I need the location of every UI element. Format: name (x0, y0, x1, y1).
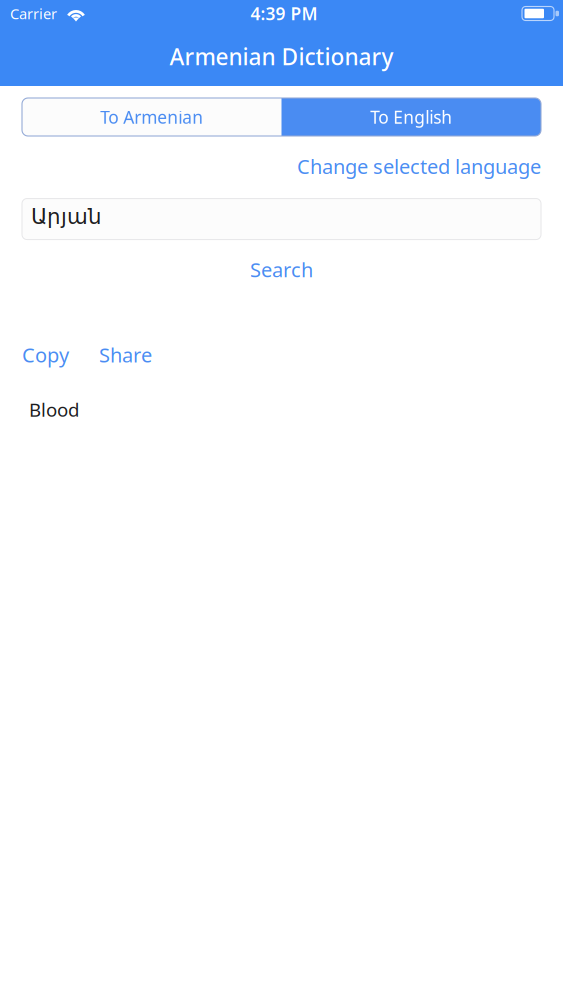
staticText: To English (370, 105, 452, 128)
button[interactable]: Change selected language (297, 153, 541, 180)
staticText: Copy (22, 342, 69, 368)
staticText: Search (250, 256, 313, 283)
staticText: Carrier (10, 4, 57, 23)
staticText: To Armenian (100, 105, 203, 128)
staticText: Armenian Dictionary (169, 41, 393, 71)
staticText: 4:39 PM (250, 2, 317, 25)
staticText: Change selected language (297, 153, 541, 180)
button[interactable]: Copy (22, 342, 69, 368)
staticText: Blood (29, 397, 79, 422)
button[interactable]: Share (99, 342, 152, 368)
button[interactable]: Search (0, 255, 563, 285)
button[interactable]: To English (281, 98, 541, 136)
button[interactable]: Արյան (22, 199, 541, 240)
staticText: Արյան (31, 204, 102, 229)
staticText: Share (99, 342, 152, 368)
button[interactable]: To Armenian (22, 98, 281, 136)
